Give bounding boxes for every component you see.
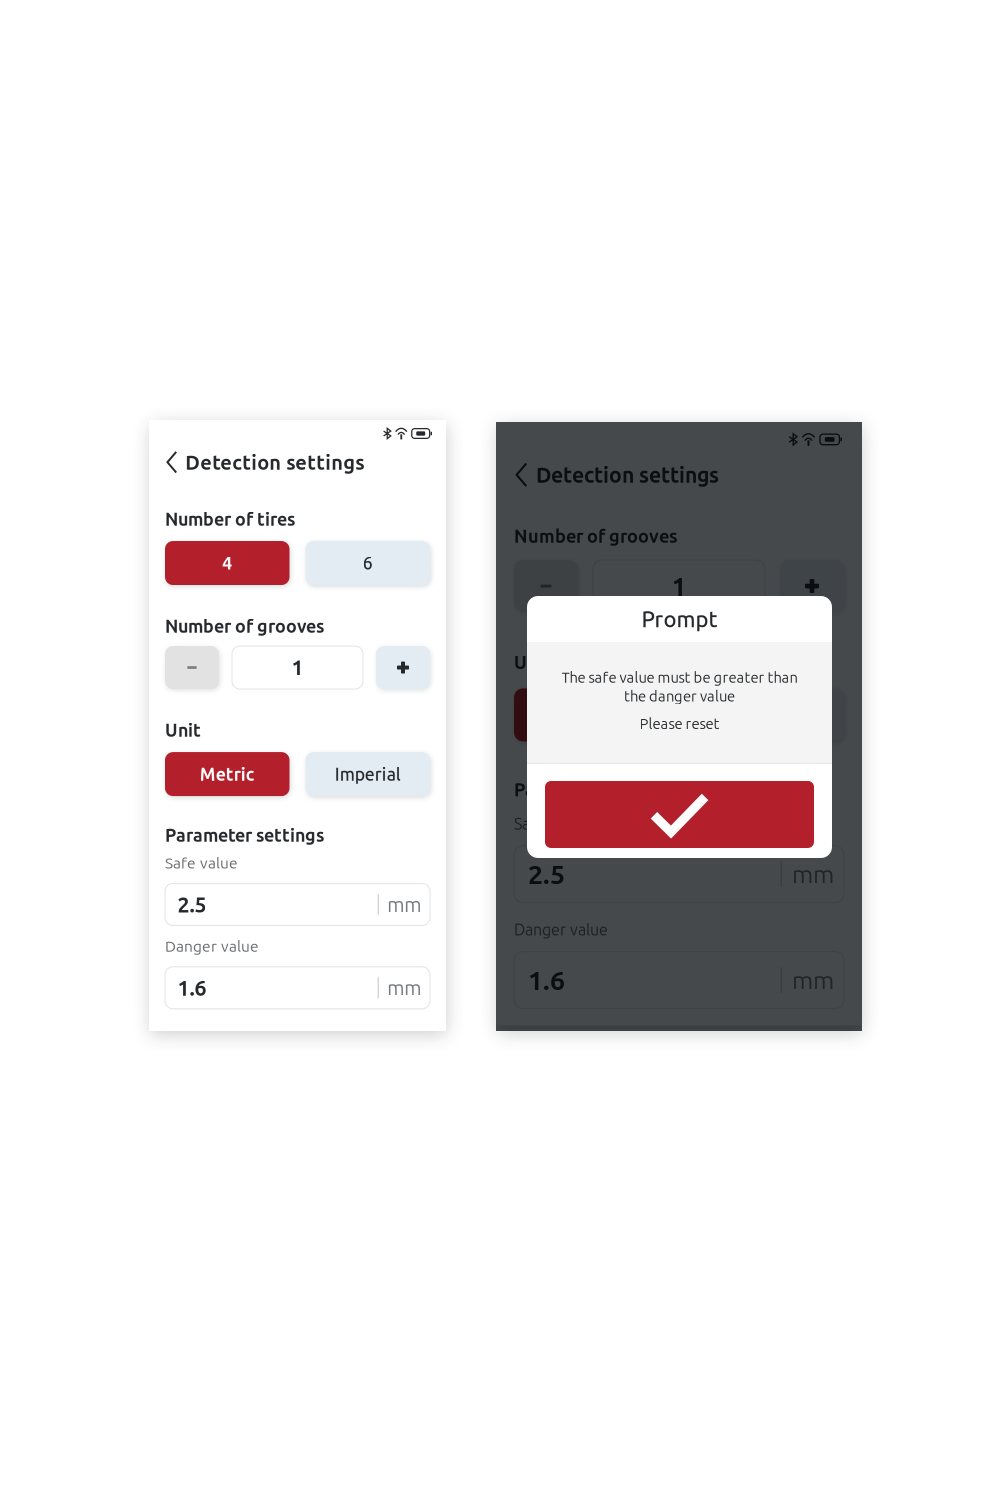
button[interactable]: 6 [305, 541, 430, 585]
staticText: Safe value [514, 815, 587, 833]
staticText: mm [387, 977, 421, 999]
staticText: 1.6 [177, 976, 206, 1000]
staticText: 6 [363, 553, 373, 573]
staticText: the danger value [624, 688, 735, 704]
button[interactable]: Increase [780, 560, 844, 612]
staticText: Metric [200, 764, 255, 784]
staticText: Detection settings [185, 451, 364, 473]
staticText: 2.5 [528, 859, 565, 889]
staticText: Number of grooves [165, 616, 324, 636]
staticText: mm [792, 966, 834, 994]
staticText: Detection settings [536, 463, 719, 487]
staticText: 4 [222, 553, 232, 573]
button[interactable]: 4 [514, 433, 670, 486]
staticText: Unit [165, 720, 201, 740]
staticText: Number of tires [165, 509, 295, 529]
staticText: mm [387, 893, 421, 916]
staticText: Parameter settings [514, 779, 678, 800]
button[interactable]: Decrease [165, 646, 219, 689]
staticText: 2.5 [177, 892, 206, 916]
button[interactable]: Decrease [514, 560, 578, 612]
button[interactable]: Back [514, 460, 529, 489]
staticText: Parameter settings [165, 825, 324, 845]
staticText: Number of grooves [514, 526, 678, 546]
staticText: 1 [671, 571, 686, 601]
staticText: Please reset [639, 715, 719, 732]
staticText: Danger value [514, 921, 608, 939]
staticText: 4 [586, 449, 597, 470]
button[interactable]: Imperial [688, 688, 844, 741]
button[interactable]: Metric [165, 752, 289, 796]
button[interactable]: Increase [376, 646, 430, 689]
staticText: Safe value [165, 854, 238, 871]
button[interactable]: Back [165, 449, 179, 475]
staticText: mm [792, 860, 834, 888]
staticText: Imperial [335, 764, 401, 784]
staticText: The safe value must be greater than [561, 669, 797, 686]
button[interactable]: 4 [165, 541, 289, 585]
staticText: Danger value [165, 937, 259, 955]
staticText: 1.6 [528, 965, 565, 995]
button[interactable]: 6 [688, 433, 844, 486]
button[interactable]: Metric [514, 688, 670, 741]
button[interactable]: Imperial [305, 752, 430, 796]
staticText: 1 [291, 656, 303, 679]
button[interactable]: Confirm [545, 781, 814, 848]
staticText: Prompt [641, 607, 717, 631]
staticText: Unit [514, 652, 551, 672]
